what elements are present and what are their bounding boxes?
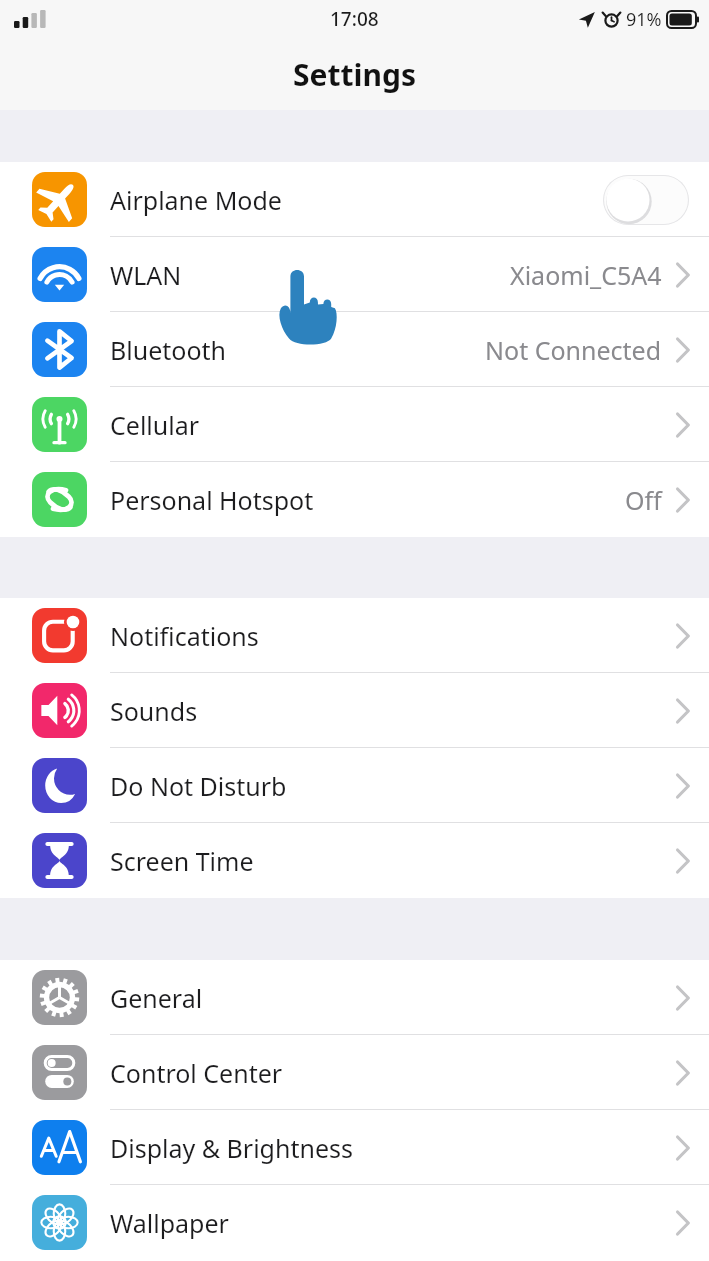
- button[interactable]: WLAN: [0, 237, 709, 312]
- staticText: Cellular: [110, 408, 676, 442]
- staticText: Personal Hotspot: [110, 483, 625, 517]
- staticText: Settings: [293, 54, 416, 95]
- staticText: General: [110, 981, 676, 1015]
- button[interactable]: Personal Hotspot: [0, 462, 709, 537]
- staticText: Do Not Disturb: [110, 769, 676, 803]
- staticText: Bluetooth: [110, 333, 485, 367]
- staticText: Off: [625, 483, 662, 517]
- button[interactable]: Cellular: [0, 387, 709, 462]
- button[interactable]: Wallpaper: [0, 1185, 709, 1260]
- button[interactable]: Notifications: [0, 598, 709, 673]
- staticText: Not Connected: [485, 333, 662, 367]
- staticText: Control Center: [110, 1056, 676, 1090]
- button[interactable]: Screen Time: [0, 823, 709, 898]
- staticText: Xiaomi_C5A4: [510, 258, 662, 292]
- button[interactable]: Display & Brightness: [0, 1110, 709, 1185]
- button[interactable]: Bluetooth: [0, 312, 709, 387]
- staticText: Notifications: [110, 619, 676, 653]
- staticText: Display & Brightness: [110, 1131, 676, 1165]
- staticText: Screen Time: [110, 844, 676, 878]
- button[interactable]: Control Center: [0, 1035, 709, 1110]
- button[interactable]: Airplane Mode toggle, off: [603, 175, 689, 225]
- button[interactable]: Airplane Mode: [0, 162, 709, 237]
- button[interactable]: Sounds: [0, 673, 709, 748]
- staticText: Sounds: [110, 694, 676, 728]
- staticText: 17:08: [330, 6, 379, 32]
- button[interactable]: General: [0, 960, 709, 1035]
- staticText: 91%: [626, 7, 662, 32]
- staticText: Airplane Mode: [110, 183, 603, 217]
- staticText: Wallpaper: [110, 1206, 676, 1240]
- staticText: WLAN: [110, 258, 510, 292]
- button[interactable]: Do Not Disturb: [0, 748, 709, 823]
